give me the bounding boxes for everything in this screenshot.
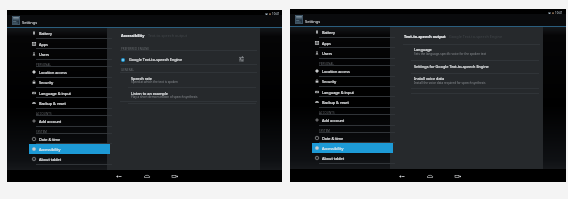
button[interactable]: Google Text-to-speech Engine	[107, 53, 260, 65]
staticText: Google Text-to-speech Engine	[449, 34, 503, 39]
staticText: Add account	[322, 118, 345, 123]
staticText: SYSTEM	[319, 129, 331, 133]
button[interactable]: Date & time	[312, 133, 393, 143]
staticText: Accessibility	[121, 33, 145, 38]
button[interactable]	[107, 88, 260, 102]
staticText: Speed at which the text is spoken	[131, 80, 178, 84]
staticText: About tablet	[39, 157, 62, 162]
button[interactable]: Recent apps	[453, 174, 462, 179]
staticText: Text-to-speech output	[404, 34, 446, 39]
staticText: PERSONAL	[319, 62, 335, 66]
button[interactable]: Battery	[29, 28, 110, 38]
staticText: Language & input	[39, 91, 71, 96]
button[interactable]	[390, 44, 543, 60]
staticText: Security	[39, 80, 54, 85]
staticText: Apps	[322, 41, 331, 46]
button[interactable]: Users	[29, 49, 110, 59]
staticText: PERSONAL	[36, 63, 52, 67]
button[interactable]: Add account	[29, 116, 110, 126]
button[interactable]	[107, 73, 260, 87]
button[interactable]: Engine settings	[239, 56, 244, 62]
button[interactable]: Date & time	[29, 134, 110, 144]
button[interactable]	[390, 73, 543, 88]
staticText: PREFERRED ENGINE	[121, 47, 150, 51]
staticText: 10:41	[272, 12, 280, 16]
staticText: Add account	[39, 119, 62, 124]
staticText: Users	[39, 52, 50, 57]
button[interactable]: Backup & reset	[29, 98, 110, 108]
staticText: Google Text-to-speech Engine	[129, 57, 183, 62]
button[interactable]: Security	[312, 76, 393, 86]
staticText: Location access	[322, 69, 350, 74]
staticText: GENERAL	[121, 68, 135, 72]
button[interactable]: Location access	[29, 67, 110, 77]
staticText: Accessibility	[39, 147, 61, 152]
button[interactable]	[390, 61, 543, 73]
staticText: Date & time	[322, 136, 344, 141]
staticText: Settings for Google Text-to-speech Engin…	[414, 64, 489, 69]
staticText: Security	[322, 79, 337, 84]
staticText: Backup & reset	[39, 101, 66, 106]
staticText: About tablet	[322, 156, 345, 161]
staticText: Install the voice data required for spee…	[414, 81, 486, 85]
staticText: Battery	[322, 30, 335, 35]
button[interactable]: Accessibility	[29, 144, 110, 154]
button[interactable]: Back	[397, 174, 406, 179]
button[interactable]: Back	[114, 174, 123, 179]
button[interactable]: Users	[312, 48, 393, 58]
staticText: Settings	[305, 19, 321, 24]
staticText: Location access	[39, 70, 67, 75]
button[interactable]: Language & input	[29, 88, 110, 98]
button[interactable]: Location access	[312, 66, 393, 76]
button[interactable]: Battery	[312, 27, 393, 37]
staticText: ACCOUNTS	[36, 112, 52, 116]
staticText: Date & time	[39, 137, 61, 142]
staticText: Language	[414, 47, 432, 52]
button[interactable]: About tablet	[312, 153, 393, 163]
button[interactable]: Recent apps	[170, 174, 179, 179]
staticText: Play a short demonstration of speech syn…	[131, 95, 198, 99]
button[interactable]: Accessibility	[312, 143, 393, 153]
staticText: ACCOUNTS	[319, 111, 335, 115]
staticText: Apps	[39, 42, 48, 47]
staticText: Text-to-speech output	[148, 33, 188, 38]
button[interactable]: Apps	[29, 39, 110, 49]
button[interactable]: Security	[29, 77, 110, 87]
staticText: Battery	[39, 31, 52, 36]
staticText: Sets the language-specific voice for the…	[414, 52, 487, 56]
button[interactable]: Apps	[312, 38, 393, 48]
staticText: Language & input	[322, 90, 354, 95]
staticText: Accessibility	[322, 146, 344, 151]
button[interactable]: Home	[142, 174, 151, 179]
button[interactable]: About tablet	[29, 154, 110, 164]
staticText: SYSTEM	[36, 130, 48, 134]
staticText: Settings	[22, 20, 38, 25]
staticText: Backup & reset	[322, 100, 349, 105]
staticText: Install voice data	[414, 76, 445, 81]
button[interactable]: Language & input	[312, 87, 393, 97]
staticText: Listen to an example	[131, 91, 168, 96]
staticText: Users	[322, 51, 333, 56]
staticText: 10:41	[555, 11, 563, 15]
button[interactable]: Backup & reset	[312, 97, 393, 107]
button[interactable]: Add account	[312, 115, 393, 125]
button[interactable]: Home	[425, 174, 434, 179]
staticText: Speech rate	[131, 76, 152, 81]
